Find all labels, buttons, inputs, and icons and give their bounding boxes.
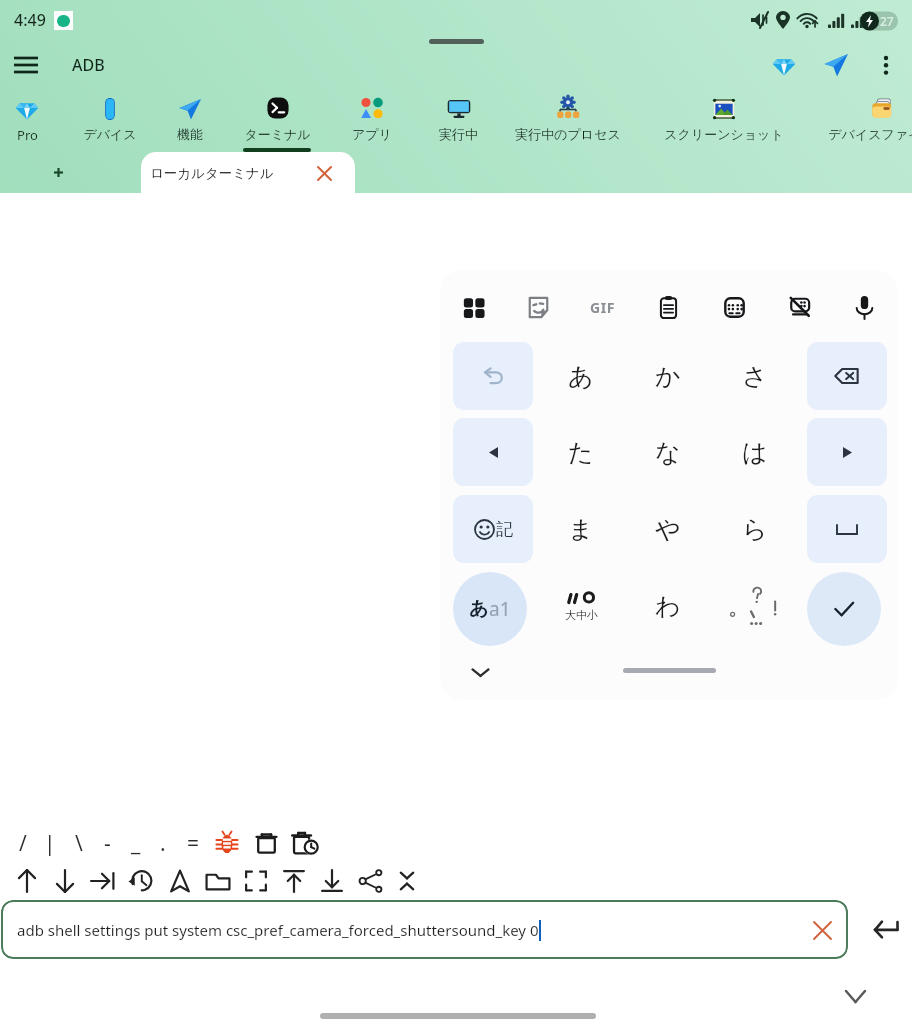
button[interactable]: わ (628, 572, 708, 640)
button[interactable]: な (628, 418, 708, 486)
staticText: アプリ (352, 126, 392, 142)
button[interactable]: up (7, 862, 47, 900)
staticText: Pro (17, 126, 38, 144)
staticText: 機能 (177, 126, 203, 142)
staticText: や (655, 514, 681, 545)
staticText: ADB (72, 54, 105, 76)
button[interactable]: Pro (0, 89, 63, 153)
staticText: - (104, 829, 111, 858)
staticText: 記 (496, 519, 513, 540)
button[interactable]: left (453, 418, 533, 486)
button[interactable]: 機能 (154, 89, 226, 153)
button[interactable]: . (149, 826, 177, 860)
staticText: GIF (590, 298, 616, 317)
staticText: あ (568, 361, 594, 392)
button[interactable]: right (807, 418, 887, 486)
staticText: た (568, 437, 594, 468)
button[interactable]: space (807, 495, 887, 563)
button[interactable]: Close tab (307, 156, 341, 190)
button[interactable]: adb shell settings put system csc_pref_c… (1, 900, 848, 959)
staticText: adb shell settings put system csc_pref_c… (17, 920, 539, 940)
staticText: か (655, 361, 681, 392)
button[interactable]: - (93, 826, 121, 860)
button[interactable]: Enter (860, 902, 912, 954)
button[interactable]: fullscreen (236, 862, 276, 900)
staticText: ま (568, 514, 594, 545)
button[interactable]: Navigation menu (0, 40, 52, 89)
staticText: デバイス (83, 126, 137, 142)
button[interactable]: スクリーンショット (645, 89, 803, 153)
staticText: 実行中のプロセス (515, 126, 621, 142)
button[interactable]: や (628, 495, 708, 563)
staticText: a1 (489, 596, 511, 622)
button[interactable]: デバイスファイル (795, 89, 912, 153)
staticText: _ (131, 829, 141, 858)
button[interactable]: tab (83, 862, 123, 900)
button[interactable]: down (45, 862, 85, 900)
button[interactable]: _ (122, 826, 150, 860)
button[interactable]: close (387, 862, 427, 900)
button[interactable]: た (541, 418, 621, 486)
button[interactable]: undo (453, 342, 533, 410)
button[interactable]: は (715, 418, 795, 486)
button[interactable]: 実行中のプロセス (498, 89, 638, 153)
staticText: | (44, 829, 56, 858)
button[interactable]: grid (451, 285, 495, 329)
button[interactable]: さ (715, 342, 795, 410)
button[interactable]: Clear text (799, 907, 845, 953)
button[interactable]: | (36, 826, 64, 860)
button[interactable]: mic (842, 285, 886, 329)
staticText: ターミナル (244, 126, 311, 142)
button[interactable]: Clear history (286, 826, 326, 860)
button[interactable]: dakuten (541, 572, 621, 640)
button[interactable]: clipboard (646, 285, 690, 329)
staticText: \ (75, 829, 83, 858)
button[interactable]: punct (715, 572, 795, 640)
button[interactable]: \ (65, 826, 93, 860)
button[interactable]: あ (541, 342, 621, 410)
button[interactable]: Pro version (758, 40, 810, 89)
button[interactable]: share (351, 862, 391, 900)
button[interactable]: ら (715, 495, 795, 563)
button[interactable]: ターミナル (225, 89, 329, 153)
button[interactable]: nokb (777, 285, 821, 329)
button[interactable]: Collapse (832, 973, 878, 1019)
staticText: 27 (880, 13, 894, 29)
button[interactable]: Send (810, 40, 862, 89)
button[interactable]: ま (541, 495, 621, 563)
button[interactable]: sticker (516, 285, 560, 329)
button[interactable]: アプリ (329, 89, 415, 153)
staticText: 4:49 (14, 9, 46, 31)
button[interactable]: More options (862, 41, 910, 89)
staticText: あ (469, 597, 489, 621)
button[interactable]: ctrl (160, 862, 200, 900)
button[interactable]: emoji (453, 495, 533, 563)
button[interactable]: top (274, 862, 314, 900)
button[interactable]: del (807, 342, 887, 410)
button[interactable]: / (9, 826, 37, 860)
button[interactable]: aa1 (453, 572, 527, 646)
button[interactable]: 実行中 (415, 89, 501, 153)
button[interactable]: gif (581, 285, 625, 329)
button[interactable]: か (628, 342, 708, 410)
button[interactable]: bottom (312, 862, 352, 900)
button[interactable]: デバイス (64, 89, 156, 153)
staticText: スクリーンショット (664, 126, 784, 142)
button[interactable]: = (179, 826, 207, 860)
button[interactable]: Hide keyboard (460, 652, 500, 692)
button[interactable]: history (121, 862, 161, 900)
button[interactable]: keypad (712, 285, 756, 329)
button[interactable]: New tab (0, 152, 116, 193)
staticText: ら (742, 514, 768, 545)
button[interactable]: Clear (248, 826, 284, 860)
staticText: 大中小 (565, 608, 598, 622)
button[interactable]: ローカルターミナル (141, 152, 355, 193)
staticText: さ (742, 361, 768, 392)
button[interactable]: Bug report (209, 826, 245, 860)
staticText: デバイスファイル (828, 126, 912, 142)
button[interactable]: enter (807, 572, 881, 646)
staticText: 実行中 (439, 126, 478, 142)
button[interactable]: folder (198, 862, 238, 900)
staticText: は (742, 437, 768, 468)
staticText: ローカルターミナル (150, 165, 274, 182)
